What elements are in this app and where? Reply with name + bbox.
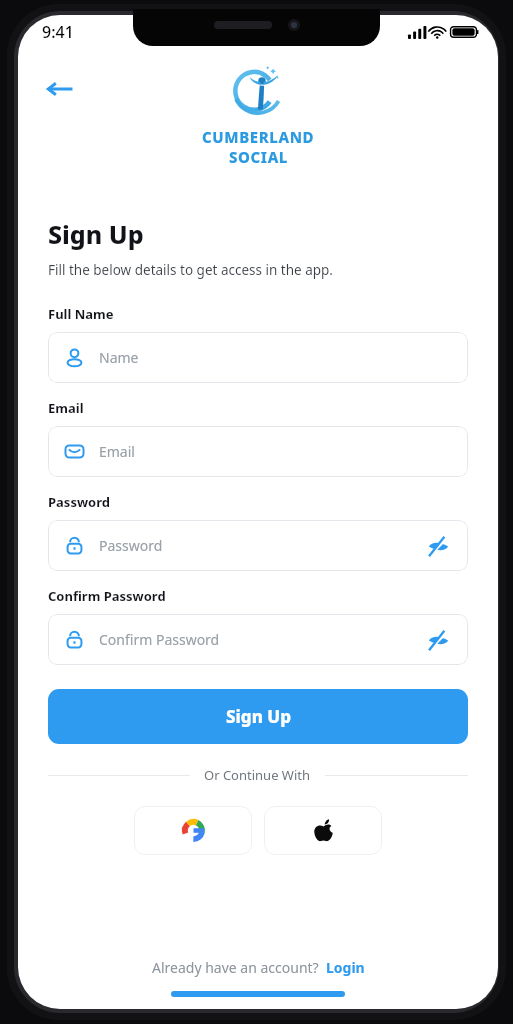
button[interactable]: Name — [48, 332, 468, 383]
button[interactable]: Continue with Google — [134, 806, 252, 855]
staticText: Fill the below details to get access in … — [48, 261, 333, 279]
staticText: Email — [99, 442, 135, 461]
staticText: Or Continue With — [204, 766, 311, 784]
staticText: CUMBERLAND — [202, 127, 315, 147]
staticText: Sign Up — [226, 705, 291, 728]
button[interactable]: Toggle password visibility — [424, 532, 452, 560]
button[interactable]: Back — [40, 69, 80, 109]
staticText: Login — [326, 958, 365, 977]
staticText: Name — [99, 348, 139, 367]
staticText: Full Name — [48, 305, 114, 323]
staticText: Password — [48, 493, 110, 511]
staticText: Password — [99, 536, 163, 555]
button[interactable]: Password — [48, 520, 468, 571]
button[interactable]: Toggle password visibility — [424, 626, 452, 654]
staticText: Email — [48, 399, 84, 417]
staticText: Confirm Password — [99, 630, 220, 649]
staticText: Confirm Password — [48, 587, 166, 605]
button[interactable]: Sign Up — [48, 689, 468, 744]
button[interactable]: Confirm Password — [48, 614, 468, 665]
button[interactable]: Email — [48, 426, 468, 477]
staticText: Already have an account? — [152, 958, 326, 977]
staticText: Sign Up — [48, 217, 144, 251]
button[interactable]: Login — [326, 958, 365, 977]
staticText: SOCIAL — [229, 147, 288, 167]
button[interactable]: Continue with Apple — [264, 806, 382, 855]
staticText: 9:41 — [42, 21, 74, 43]
